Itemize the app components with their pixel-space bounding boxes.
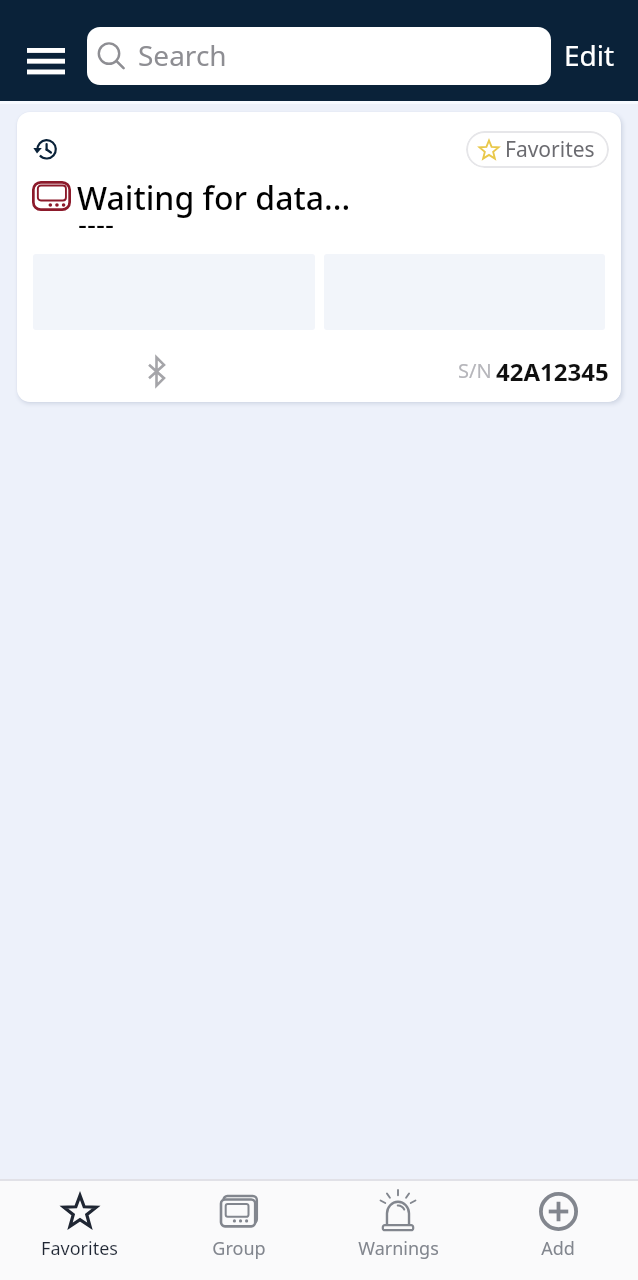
- staticText: S/N: [458, 357, 492, 384]
- staticText: Add: [541, 1236, 575, 1261]
- button[interactable]: Group: [159, 1181, 318, 1280]
- button[interactable]: Edit: [552, 26, 626, 84]
- button[interactable]: Add: [478, 1181, 638, 1280]
- staticText: Group: [212, 1236, 266, 1261]
- button[interactable]: Favorites: [466, 131, 609, 168]
- staticText: Waiting for data...: [77, 176, 351, 220]
- button[interactable]: Menu: [12, 34, 80, 88]
- button[interactable]: History: [26, 131, 63, 168]
- staticText: Edit: [564, 36, 615, 74]
- staticText: ----: [78, 204, 115, 242]
- staticText: 42A12345: [496, 355, 609, 388]
- button[interactable]: History: [17, 112, 621, 402]
- button[interactable]: Warnings: [318, 1181, 478, 1280]
- button[interactable]: Search: [87, 27, 551, 85]
- staticText: Search: [138, 36, 227, 74]
- button[interactable]: Favorites: [0, 1181, 159, 1280]
- staticText: Favorites: [41, 1236, 118, 1261]
- staticText: Warnings: [358, 1236, 439, 1261]
- staticText: Favorites: [505, 135, 595, 164]
